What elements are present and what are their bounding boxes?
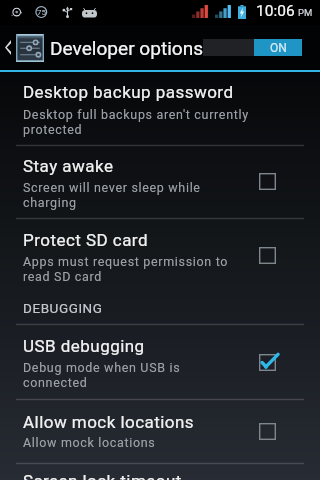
- button[interactable]: Developer options on/off: [203, 39, 302, 56]
- staticText: Stay awake: [23, 156, 114, 176]
- staticText: Developer options: [50, 37, 204, 59]
- staticText: Protect SD card: [23, 230, 148, 250]
- button[interactable]: Protect SD card: [0, 219, 320, 291]
- staticText: 75: [37, 8, 46, 17]
- button[interactable]: Allow mock locations: [0, 400, 320, 463]
- button[interactable]: Navigate up: [0, 25, 46, 70]
- button[interactable]: USB debugging: [0, 325, 320, 399]
- staticText: Desktop full backups aren't currently pr…: [23, 107, 249, 137]
- button[interactable]: Screen lock timeout: [0, 464, 320, 480]
- staticText: DEBUGGING: [23, 300, 103, 316]
- staticText: Screen will never sleep while charging: [23, 180, 201, 210]
- staticText: Desktop backup password: [23, 82, 234, 102]
- staticText: USB debugging: [23, 336, 145, 356]
- button[interactable]: Desktop backup password: [0, 72, 320, 145]
- button[interactable]: Stay awake: [0, 146, 320, 218]
- staticText: Allow mock locations: [23, 412, 195, 432]
- staticText: Screen lock timeout: [23, 471, 182, 480]
- staticText: PM: [298, 7, 313, 18]
- staticText: Allow mock locations: [23, 435, 156, 450]
- staticText: ON: [270, 41, 287, 55]
- staticText: 10:06: [256, 2, 295, 20]
- staticText: Apps must request permission to read SD …: [23, 254, 229, 284]
- staticText: Debug mode when USB is connected: [23, 360, 181, 390]
